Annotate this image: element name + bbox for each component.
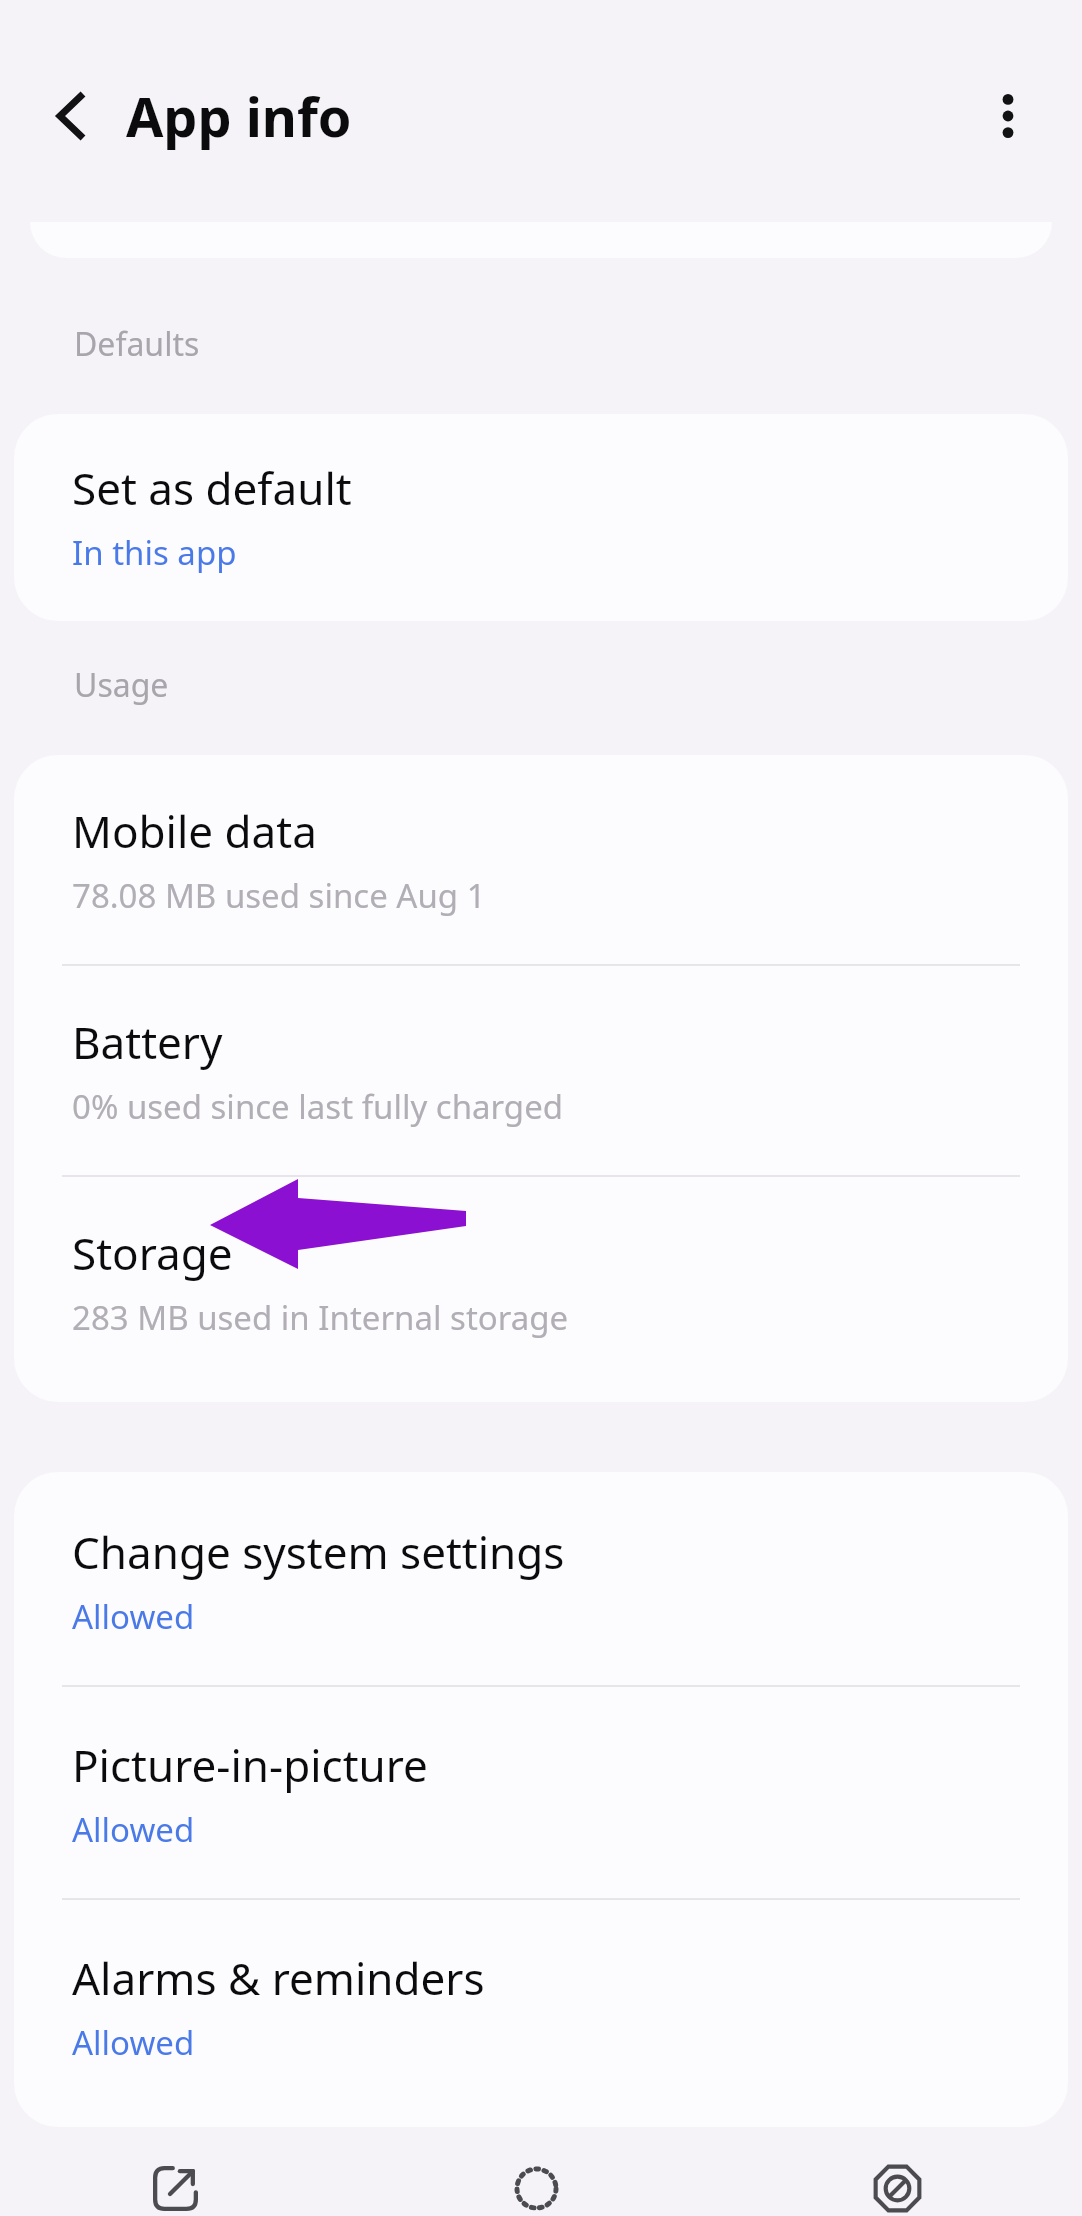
button[interactable]: Set as default — [14, 414, 1068, 621]
button[interactable]: Disable — [360, 2127, 721, 2216]
other: Annotation arrow — [14, 1177, 1068, 1327]
button[interactable]: Back — [30, 74, 114, 158]
button[interactable]: Open — [0, 2127, 360, 2216]
staticText: Set as default — [72, 458, 352, 518]
staticText: In this app — [72, 530, 237, 575]
button[interactable]: Force stop — [721, 2127, 1082, 2216]
button[interactable]: Battery — [14, 966, 1068, 1175]
staticText: Allowed — [72, 1807, 195, 1852]
staticText: Defaults — [74, 322, 200, 366]
staticText: 78.08 MB used since Aug 1 — [72, 873, 486, 918]
staticText: Storage — [72, 1223, 233, 1283]
button[interactable]: Change system settings — [14, 1472, 1068, 1685]
staticText: Change system settings — [72, 1522, 565, 1582]
staticText: 0% used since last fully charged — [72, 1084, 564, 1129]
button[interactable]: Storage — [14, 1177, 1068, 1402]
staticText: App info — [126, 79, 352, 153]
button[interactable]: Picture-in-picture — [14, 1687, 1068, 1898]
button[interactable]: Mobile data — [14, 755, 1068, 964]
staticText: Alarms & reminders — [72, 1948, 485, 2008]
staticText: Allowed — [72, 2020, 195, 2065]
staticText: Usage — [74, 663, 169, 707]
button[interactable]: More options — [966, 74, 1050, 158]
staticText: Allowed — [72, 1594, 195, 1639]
staticText: 283 MB used in Internal storage — [72, 1295, 569, 1340]
button[interactable]: Alarms & reminders — [14, 1900, 1068, 2127]
staticText: Battery — [72, 1012, 223, 1072]
staticText: Mobile data — [72, 801, 317, 861]
staticText: Picture-in-picture — [72, 1735, 428, 1795]
